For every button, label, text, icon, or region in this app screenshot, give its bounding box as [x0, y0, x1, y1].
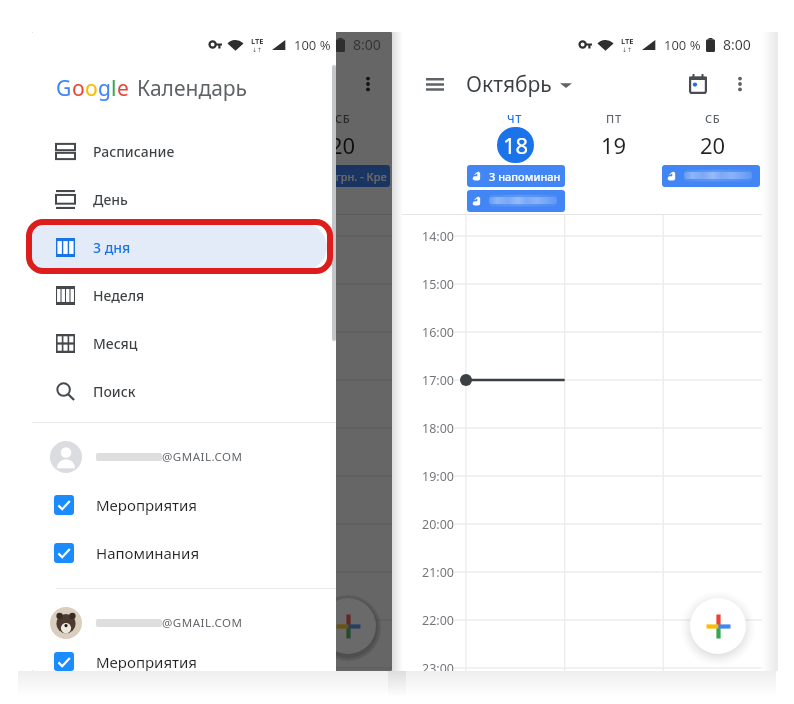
staticText: l: [111, 74, 117, 103]
staticText: Месяц: [93, 334, 138, 353]
staticText: e: [117, 74, 129, 103]
button[interactable]: Open navigation drawer: [411, 60, 459, 108]
staticText: Календарь: [137, 74, 248, 103]
button[interactable]: Расписание: [32, 127, 336, 175]
staticText: 8:00: [353, 35, 381, 54]
staticText: o: [72, 74, 85, 103]
staticText: Расписание: [93, 142, 175, 161]
staticText: 100 %: [294, 36, 331, 54]
staticText: Неделя: [93, 286, 145, 305]
staticText: 16:00: [422, 324, 454, 341]
staticText: 18: [503, 130, 529, 160]
staticText: 23:00: [422, 660, 454, 671]
button[interactable]: [467, 190, 565, 212]
staticText: 17:00: [422, 372, 454, 389]
staticText: LTE: [621, 36, 634, 46]
staticText: 100 %: [664, 36, 701, 54]
button[interactable]: Мероприятия: [32, 481, 336, 529]
button[interactable]: [662, 165, 760, 187]
staticText: o: [85, 74, 98, 103]
staticText: СБ: [705, 111, 721, 125]
staticText: 15:00: [52, 276, 84, 293]
staticText: 16:00: [52, 324, 84, 341]
staticText: 20: [700, 130, 726, 160]
button[interactable]: 3 напоминан: [467, 165, 565, 187]
staticText: G: [56, 74, 72, 103]
staticText: 19:00: [52, 468, 84, 485]
staticText: Мероприятия: [96, 495, 198, 515]
staticText: @GMAIL.COM: [162, 615, 243, 631]
staticText: 14:00: [52, 228, 84, 245]
button[interactable]: Октябрь: [466, 70, 572, 99]
button[interactable]: @GMAIL.COM: [32, 433, 336, 481]
staticText: 8:00: [723, 35, 751, 54]
staticText: ↓↑: [252, 46, 263, 53]
staticText: ЧТ: [507, 111, 523, 125]
staticText: Октябрь: [466, 70, 552, 99]
staticText: 19: [601, 130, 627, 160]
staticText: Напоминания: [96, 543, 200, 563]
staticText: 22:00: [422, 612, 454, 629]
staticText: @GMAIL.COM: [162, 449, 243, 465]
staticText: LTE: [251, 36, 264, 46]
button[interactable]: Create event: [690, 598, 746, 654]
staticText: 20: [330, 130, 356, 160]
button[interactable]: Go to today: [676, 62, 720, 106]
staticText: 20:00: [422, 516, 454, 533]
staticText: 18:00: [52, 420, 84, 437]
staticText: 19:00: [422, 468, 454, 485]
staticText: 18:00: [422, 420, 454, 437]
staticText: 3 напоминан: [489, 169, 561, 184]
staticText: 15:00: [422, 276, 454, 293]
button[interactable]: Поиск: [32, 367, 336, 415]
staticText: 23:00: [52, 660, 84, 671]
staticText: Поиск: [93, 382, 136, 401]
staticText: 22:00: [52, 612, 84, 629]
button[interactable]: More options: [720, 64, 760, 104]
staticText: 14:00: [422, 228, 454, 245]
button[interactable]: Напоминания: [32, 529, 336, 577]
staticText: g: [98, 74, 111, 103]
button[interactable]: День: [32, 175, 336, 223]
staticText: СБ: [335, 111, 351, 125]
staticText: 18: [133, 130, 159, 160]
button[interactable]: Мероприятия: [32, 652, 336, 671]
button[interactable]: Месяц: [32, 319, 336, 367]
staticText: ↓↑: [622, 46, 633, 53]
button[interactable]: [97, 190, 195, 212]
staticText: Мероприятия: [96, 652, 198, 671]
button[interactable]: @GMAIL.COM: [32, 594, 336, 652]
staticText: ПТ: [606, 111, 622, 125]
staticText: 100 грн. - Кре: [314, 169, 387, 184]
button[interactable]: 3 дня: [32, 223, 336, 271]
button[interactable]: 100 грн. - Кре: [292, 165, 390, 187]
staticText: 17:00: [52, 372, 84, 389]
staticText: 3 дня: [93, 238, 131, 257]
staticText: День: [93, 190, 128, 209]
button[interactable]: Неделя: [32, 271, 336, 319]
staticText: 21:00: [422, 564, 454, 581]
